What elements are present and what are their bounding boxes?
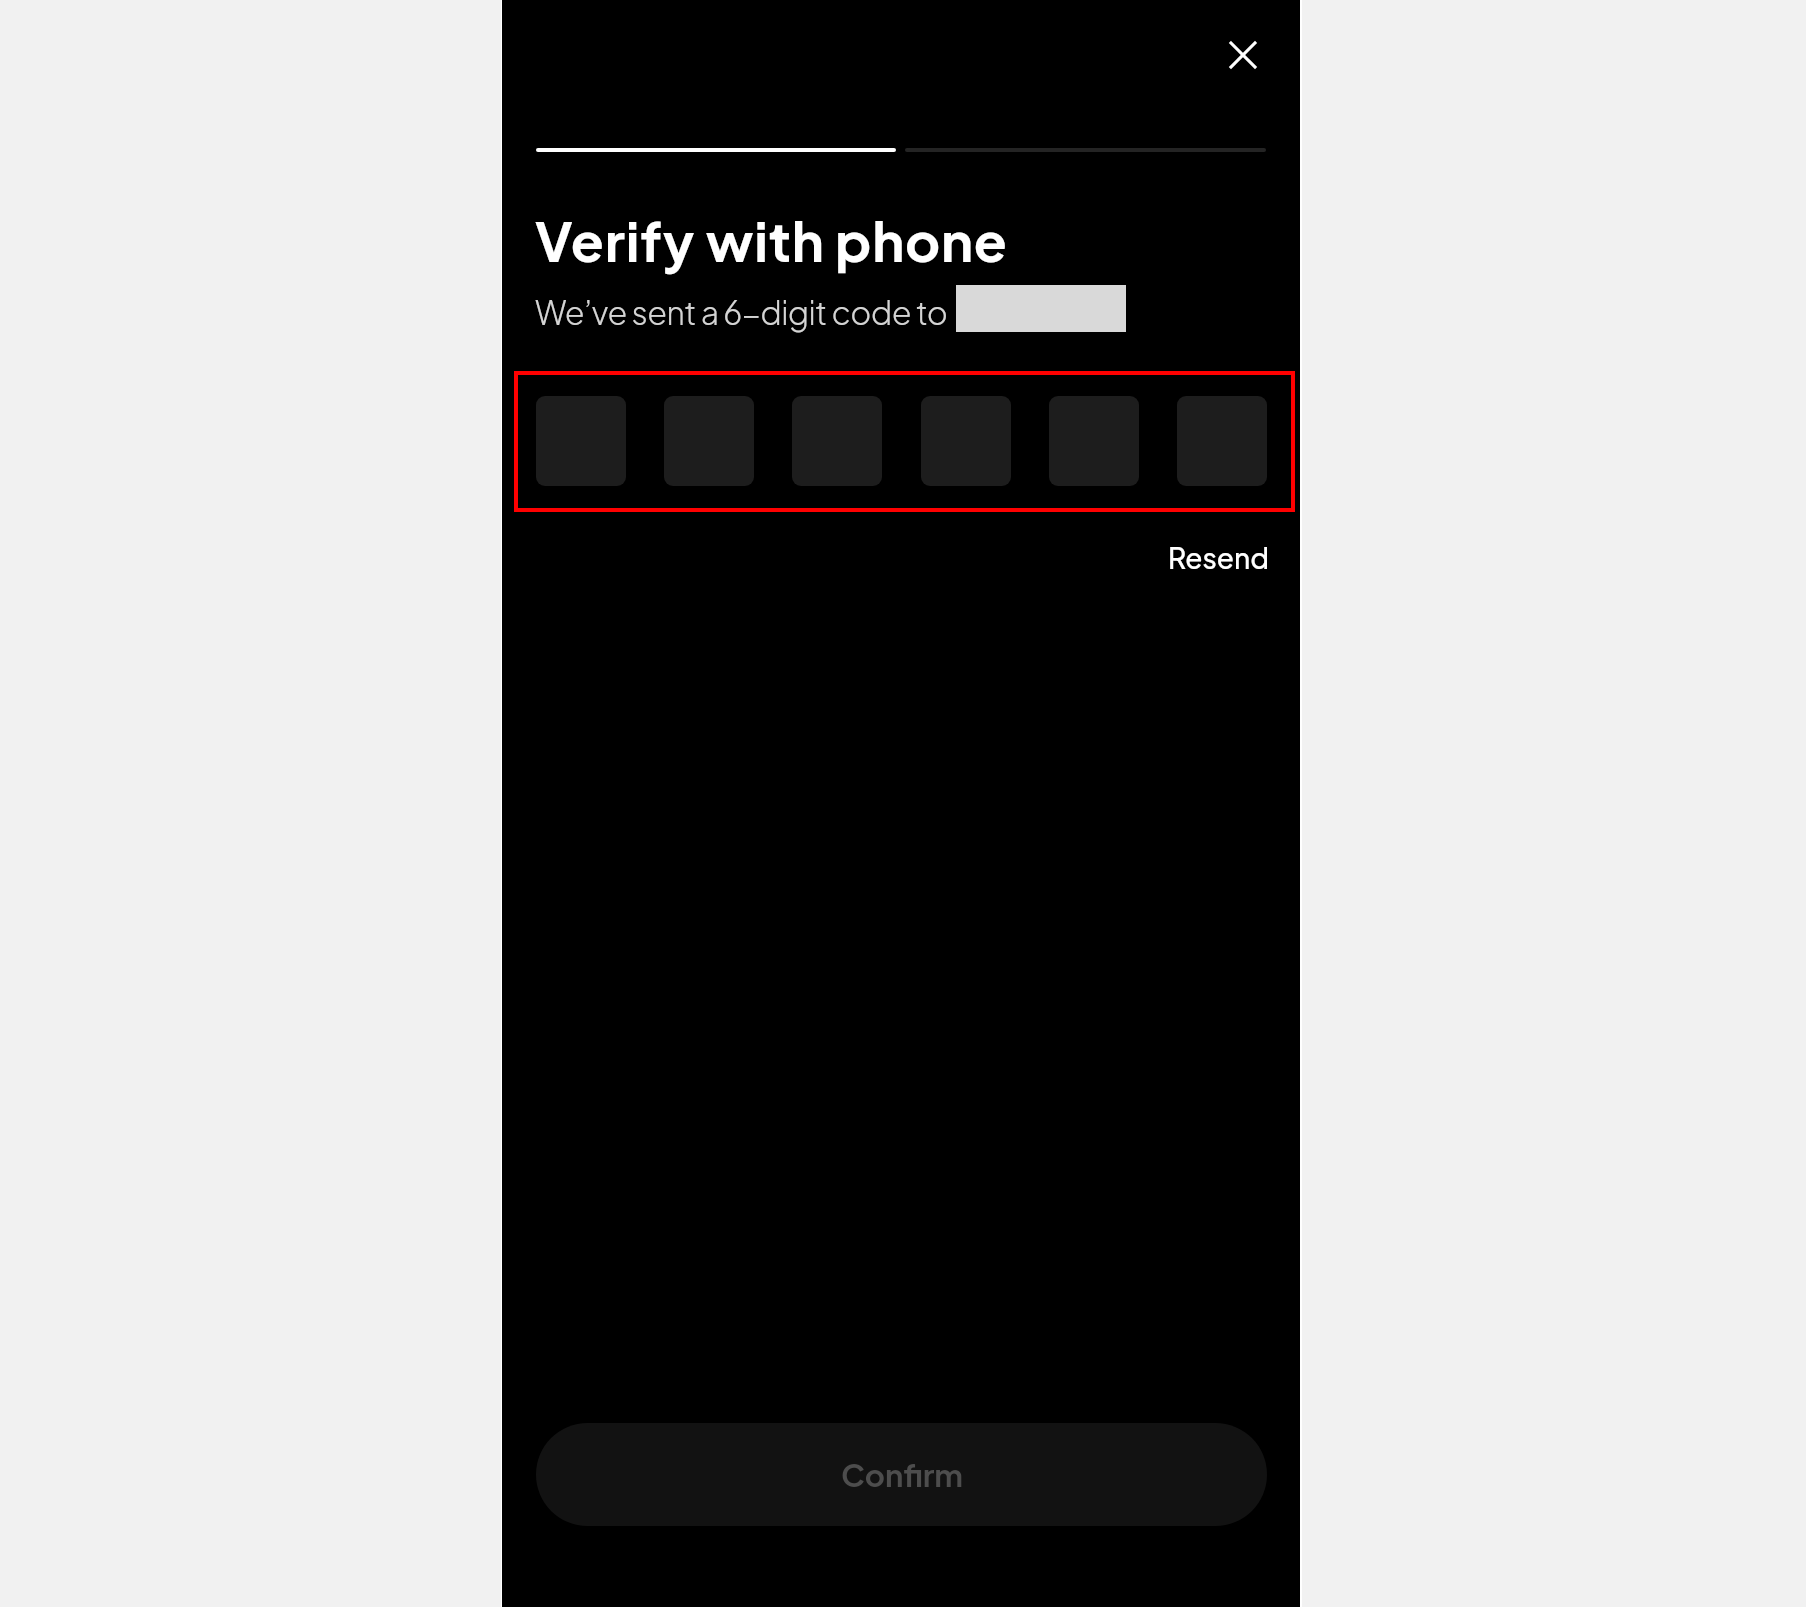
- staticText: Verify with phone: [535, 206, 1008, 274]
- button[interactable]: Close: [1207, 19, 1279, 91]
- staticText: We’ve sent a 6-digit code to: [535, 292, 948, 332]
- button[interactable]: Resend: [1150, 526, 1287, 589]
- staticText: Confirm: [841, 1455, 963, 1494]
- staticText: Resend: [1168, 540, 1269, 575]
- button[interactable]: Confirm: [536, 1423, 1267, 1526]
